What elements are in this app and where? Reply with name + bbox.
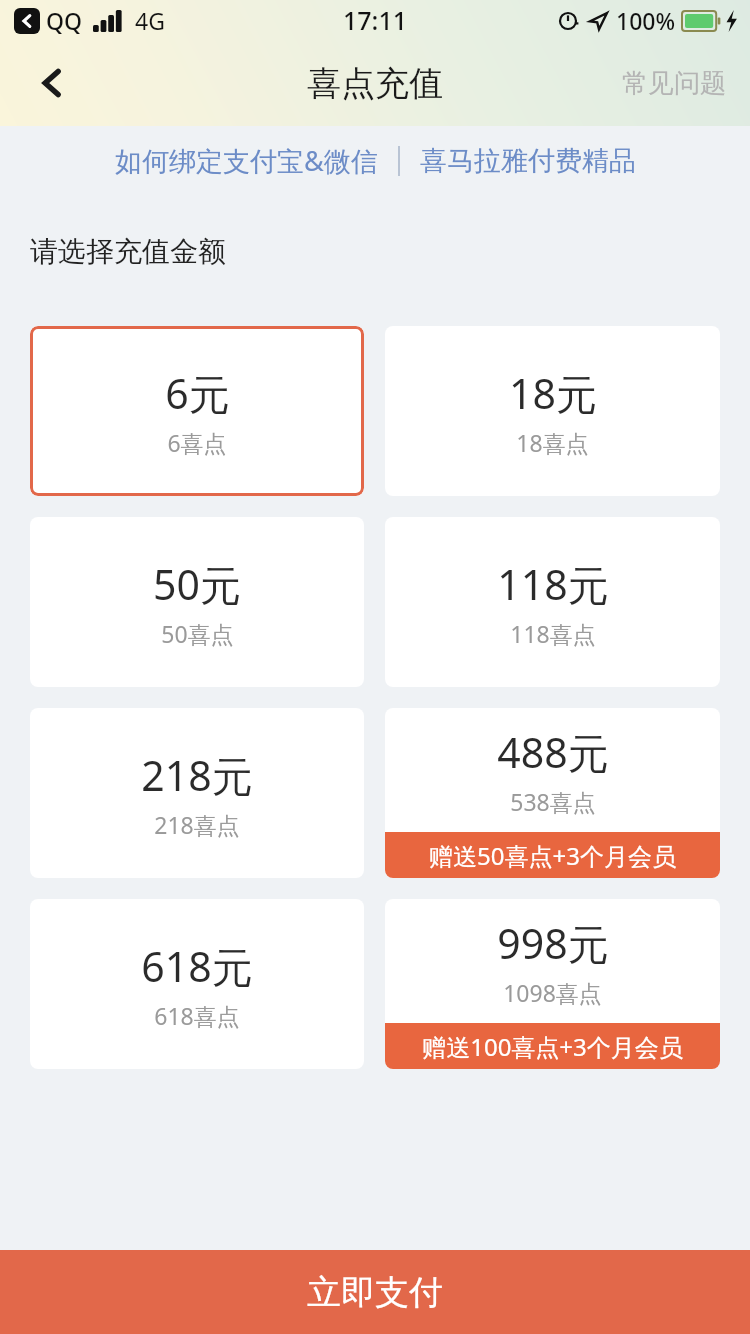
button[interactable]: 常见问题 xyxy=(598,53,750,114)
button[interactable]: 喜马拉雅付费精品 xyxy=(414,136,642,186)
staticText: 17:11 xyxy=(343,3,408,37)
staticText: QQ xyxy=(46,5,83,36)
staticText: 喜点充值 xyxy=(307,62,443,105)
button[interactable]: 618元 xyxy=(30,899,364,1069)
staticText: 赠送50喜点+3个月会员 xyxy=(429,839,676,872)
staticText: 998元 xyxy=(497,915,609,971)
staticText: 立即支付 xyxy=(307,1271,443,1314)
staticText: 6元 xyxy=(165,365,230,421)
button[interactable]: 218元 xyxy=(30,708,364,878)
staticText: 618元 xyxy=(141,938,253,994)
staticText: 118元 xyxy=(497,556,609,612)
button[interactable]: 6元 xyxy=(30,326,364,496)
button[interactable]: 18元 xyxy=(385,326,720,496)
button[interactable]: 如何绑定支付宝&微信 xyxy=(109,134,384,187)
button[interactable]: 返回 xyxy=(22,53,82,113)
staticText: 218元 xyxy=(141,747,253,803)
staticText: 50喜点 xyxy=(161,618,234,649)
staticText: 喜马拉雅付费精品 xyxy=(420,144,636,178)
button[interactable]: 50元 xyxy=(30,517,364,687)
staticText: 18喜点 xyxy=(516,427,589,458)
staticText: 18元 xyxy=(509,365,597,421)
staticText: 常见问题 xyxy=(622,67,726,100)
button[interactable]: 998元 xyxy=(385,899,720,1069)
button[interactable]: 488元 xyxy=(385,708,720,878)
staticText: 218喜点 xyxy=(154,809,240,840)
button[interactable]: 立即支付 xyxy=(0,1250,750,1334)
staticText: 6喜点 xyxy=(167,427,227,458)
staticText: 100% xyxy=(616,5,676,36)
button[interactable]: 118元 xyxy=(385,517,720,687)
staticText: 538喜点 xyxy=(510,786,596,817)
staticText: 请选择充值金额 xyxy=(30,234,226,269)
staticText: 488元 xyxy=(497,724,609,780)
staticText: 4G xyxy=(135,5,165,36)
staticText: 赠送100喜点+3个月会员 xyxy=(422,1030,683,1063)
staticText: 118喜点 xyxy=(510,618,596,649)
staticText: 如何绑定支付宝&微信 xyxy=(115,142,378,179)
staticText: 1098喜点 xyxy=(503,977,602,1008)
staticText: 50元 xyxy=(153,556,241,612)
staticText: 618喜点 xyxy=(154,1000,240,1031)
